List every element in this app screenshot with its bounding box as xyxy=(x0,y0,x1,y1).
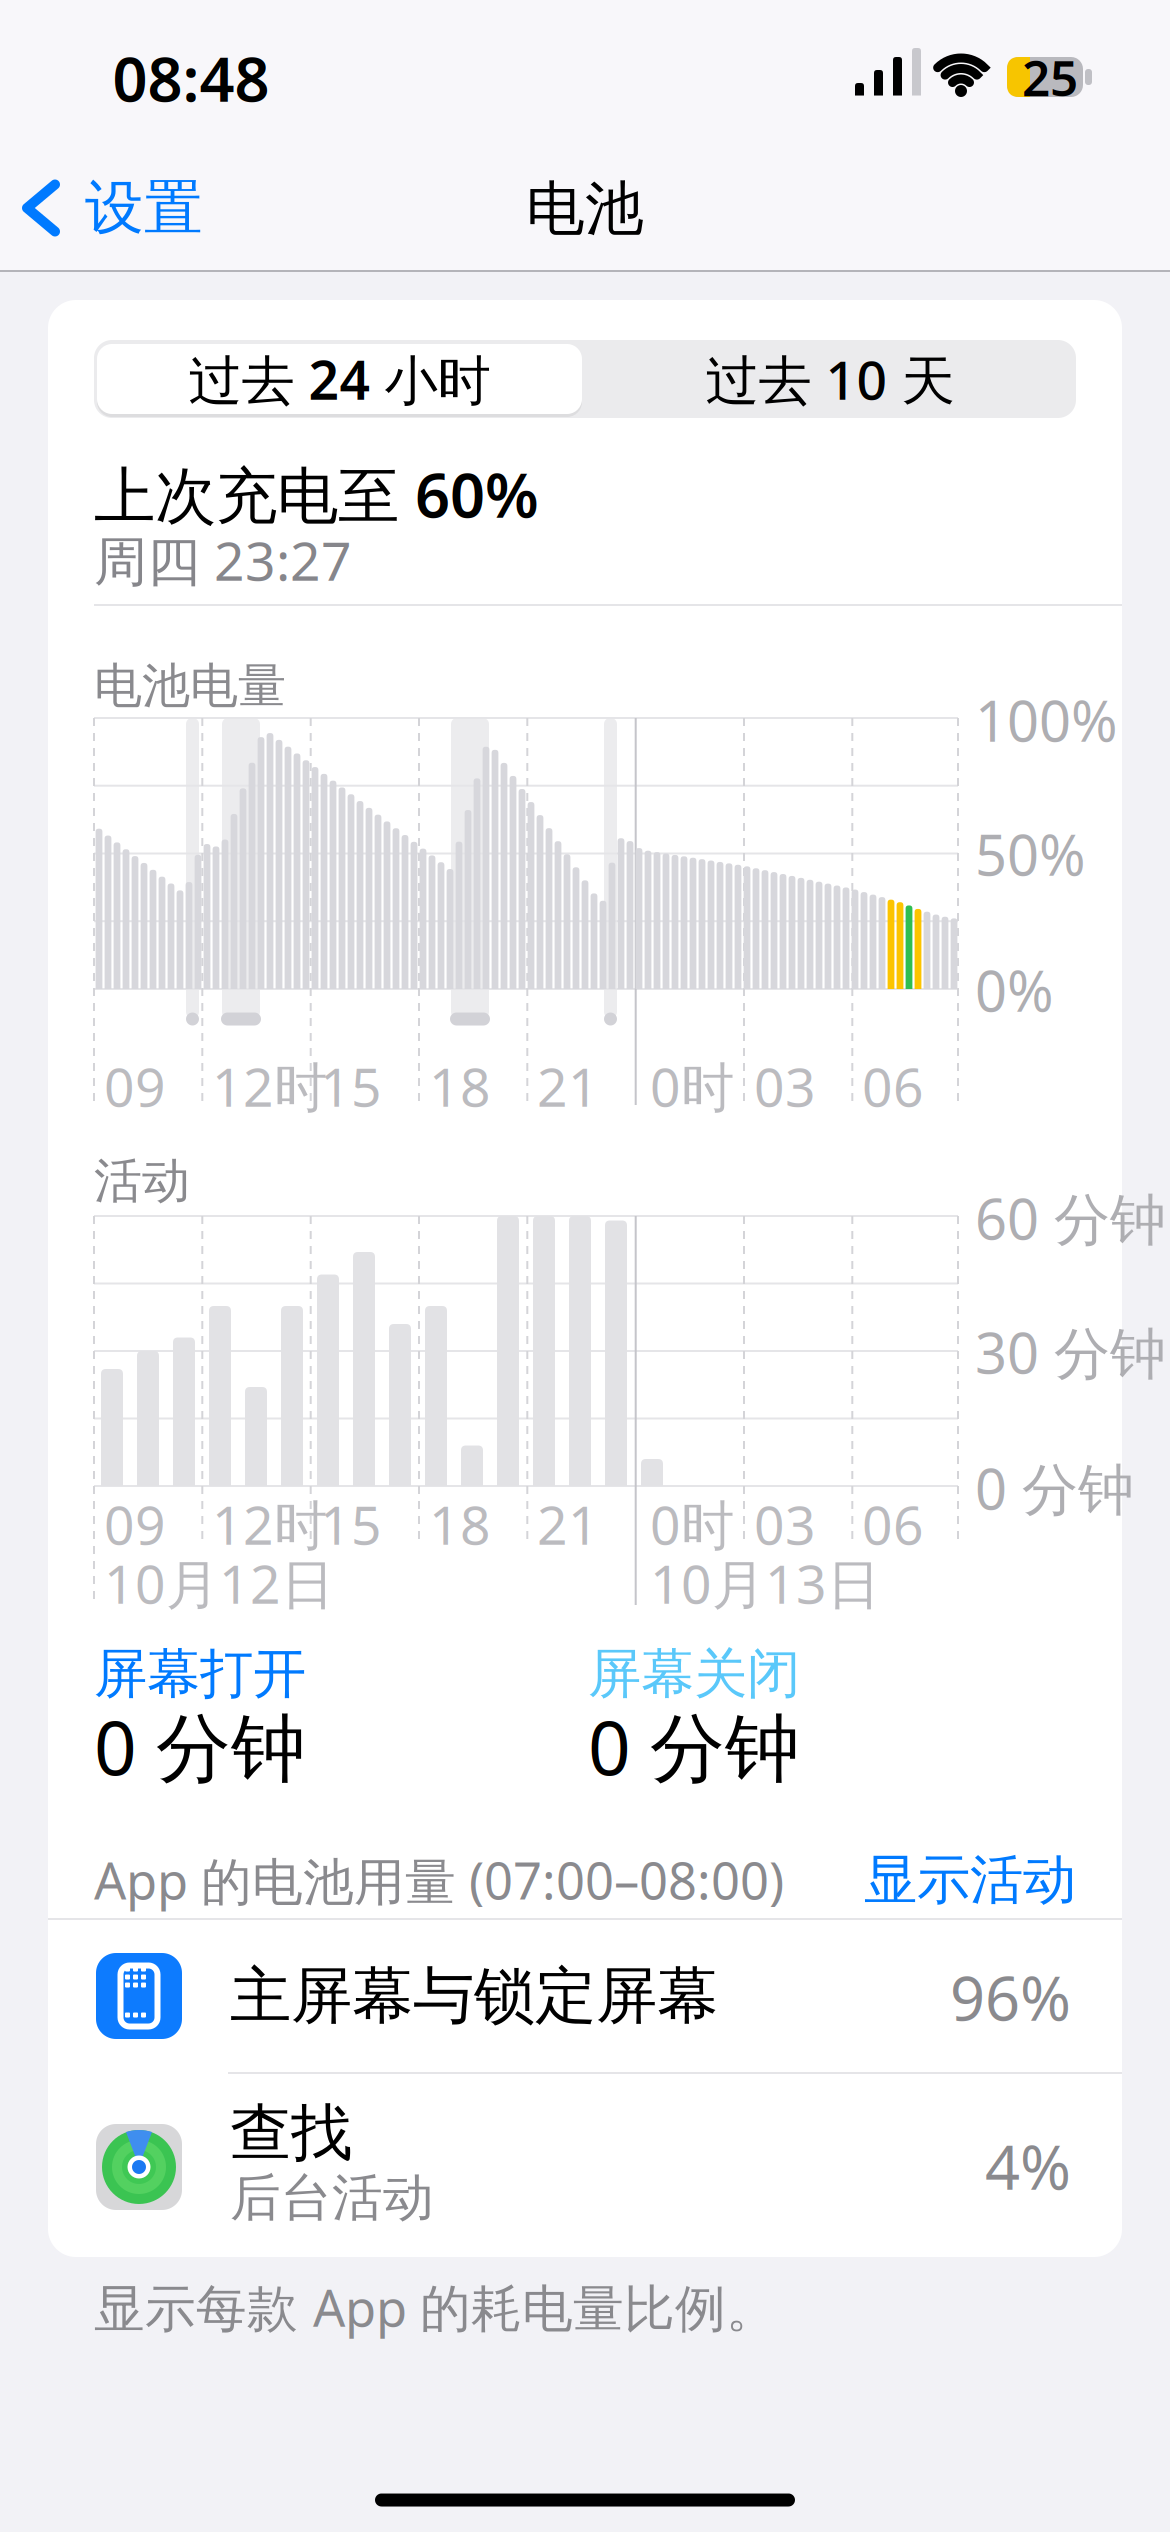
staticText: 03 xyxy=(754,1051,816,1121)
button[interactable]: 主屏幕与锁定屏幕 xyxy=(0,0,1170,2532)
staticText: 显示每款 App 的耗电量比例。 xyxy=(94,2273,777,2341)
staticText: 96% xyxy=(950,1956,1071,2038)
staticText: 上次充电至 60% xyxy=(94,453,539,535)
staticText: 4% xyxy=(985,2125,1071,2207)
staticText: 21 xyxy=(537,1051,599,1121)
button[interactable]: 返回设置 xyxy=(27,168,247,248)
staticText: 查找 xyxy=(230,2095,352,2171)
button[interactable]: 显示活动 xyxy=(776,1845,1076,1915)
staticText: 屏幕关闭 xyxy=(588,1641,800,1707)
staticText: 0% xyxy=(975,953,1054,1027)
staticText: 后台活动 xyxy=(230,2167,434,2229)
staticText: 设置 xyxy=(85,172,203,244)
staticText: 50% xyxy=(975,817,1086,891)
staticText: App 的电池用量 (07:00–08:00) xyxy=(94,1846,784,1914)
staticText: 09 xyxy=(104,1051,166,1121)
staticText: 电池电量 xyxy=(94,656,286,715)
staticText: 屏幕打开 xyxy=(94,1641,306,1707)
staticText: 25 xyxy=(1022,44,1078,110)
staticText: 06 xyxy=(862,1489,924,1559)
staticText: 0 分钟 xyxy=(975,1451,1134,1525)
staticText: 06 xyxy=(862,1051,924,1121)
staticText: 0时 xyxy=(650,1489,734,1559)
staticText: 电池 xyxy=(526,173,644,245)
staticText: 18 xyxy=(429,1051,491,1121)
staticText: 18 xyxy=(429,1489,491,1559)
staticText: 显示活动 xyxy=(864,1847,1076,1913)
button[interactable]: 过去 24 小时 xyxy=(97,344,582,414)
staticText: 15 xyxy=(320,1489,382,1559)
staticText: 10月12日 xyxy=(104,1548,334,1618)
staticText: 活动 xyxy=(94,1151,190,1210)
staticText: 过去 10 天 xyxy=(705,344,954,414)
staticText: 15 xyxy=(320,1051,382,1121)
staticText: 08:48 xyxy=(112,37,269,119)
staticText: 主屏幕与锁定屏幕 xyxy=(230,1958,718,2034)
button[interactable]: 查找 xyxy=(0,0,1170,2532)
staticText: 09 xyxy=(104,1489,166,1559)
staticText: 100% xyxy=(975,683,1118,757)
staticText: 60 分钟 xyxy=(975,1181,1166,1255)
staticText: 过去 24 小时 xyxy=(188,344,490,414)
staticText: 周四 23:27 xyxy=(94,525,352,595)
staticText: 21 xyxy=(537,1489,599,1559)
staticText: 03 xyxy=(754,1489,816,1559)
staticText: 12时 xyxy=(212,1051,327,1121)
staticText: 10月13日 xyxy=(650,1548,880,1618)
staticText: 0 分钟 xyxy=(94,1696,306,1796)
staticText: 0时 xyxy=(650,1051,734,1121)
staticText: 30 分钟 xyxy=(975,1315,1166,1389)
button[interactable]: 过去 10 天 xyxy=(587,342,1072,416)
staticText: 0 分钟 xyxy=(588,1696,800,1796)
staticText: 12时 xyxy=(212,1489,327,1559)
